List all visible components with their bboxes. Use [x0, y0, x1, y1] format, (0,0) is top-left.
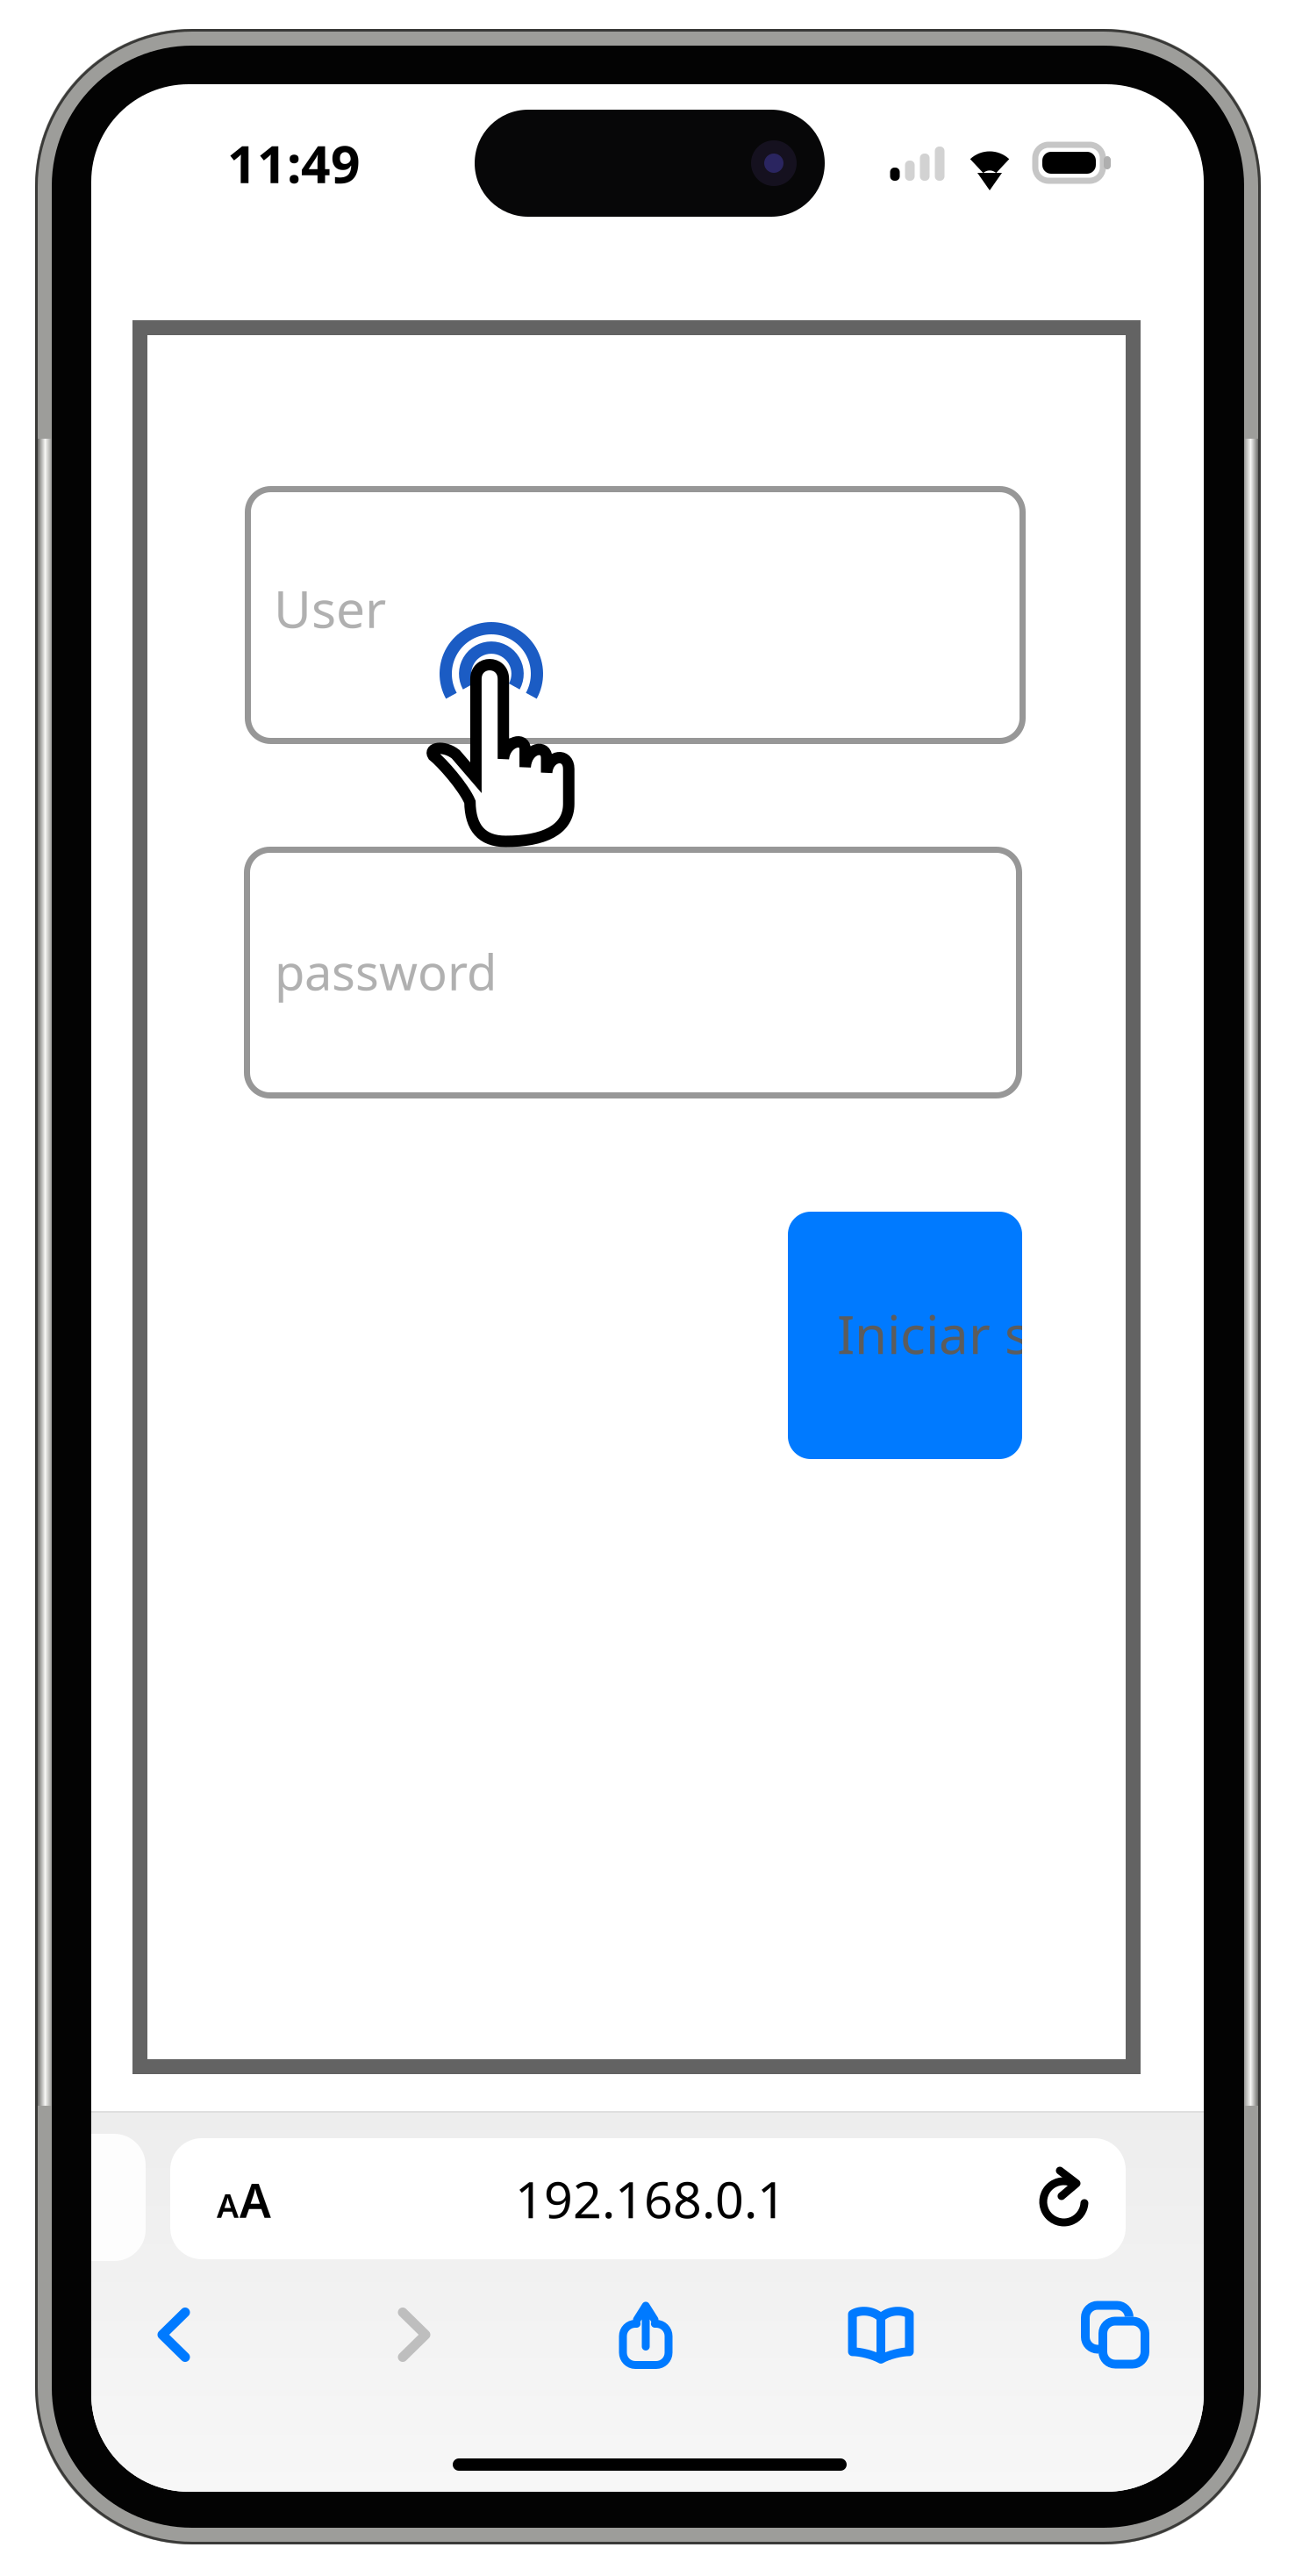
button[interactable]: Tabs [1027, 2269, 1203, 2401]
staticText: A [240, 2169, 271, 2231]
button[interactable]: Share [558, 2269, 733, 2401]
staticText: A [217, 2183, 239, 2227]
staticText: Iniciar sesión [837, 1299, 1163, 1369]
button[interactable]: Bookmarks [793, 2269, 969, 2401]
button[interactable]: Back [86, 2269, 261, 2401]
staticText: 11:49 [227, 129, 361, 197]
button[interactable]: Forward [326, 2269, 502, 2401]
staticText: 192.168.0.1 [515, 2165, 786, 2232]
button[interactable]: Iniciar sesión [788, 1212, 1022, 1459]
staticText: User [274, 574, 386, 642]
button[interactable]: A [170, 2138, 1126, 2259]
staticText: password [275, 939, 497, 1004]
